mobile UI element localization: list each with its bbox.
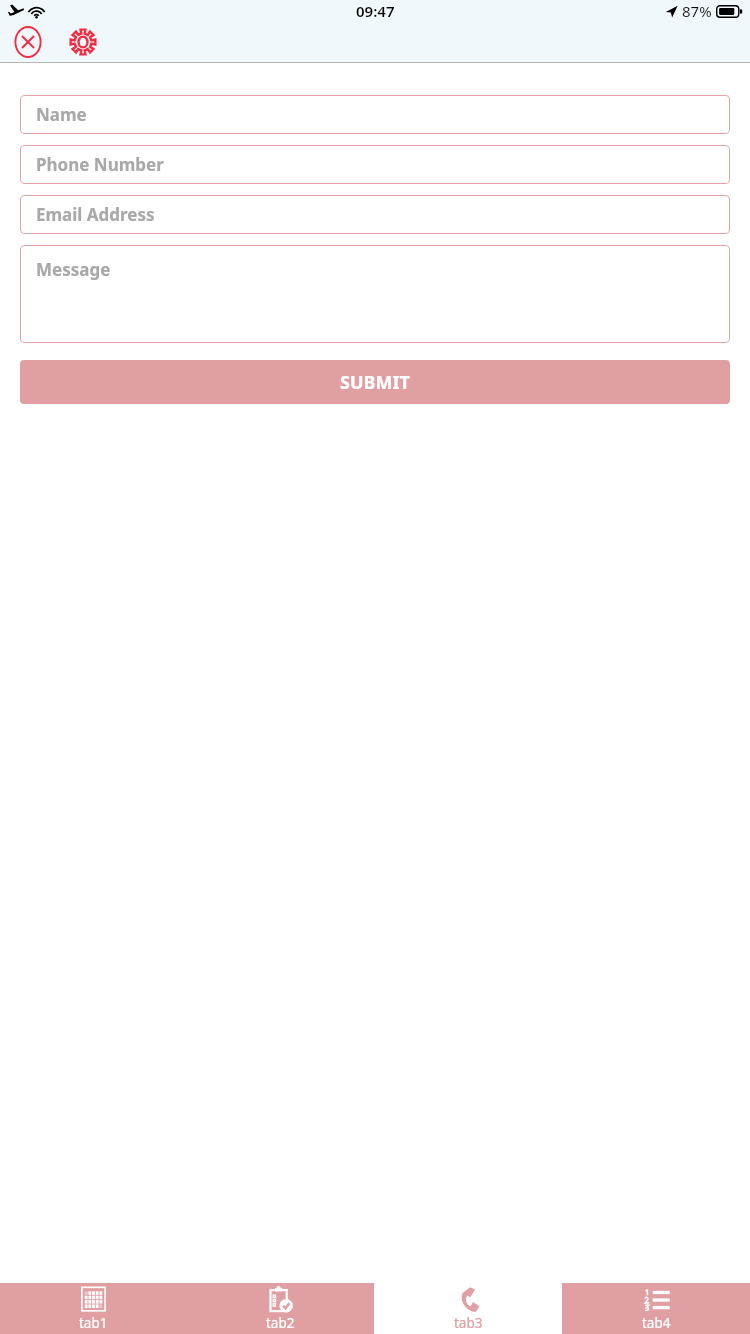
button[interactable]: tab1 — [0, 1283, 187, 1334]
staticText: Phone Number — [36, 153, 164, 176]
staticText: SUBMIT — [340, 370, 410, 395]
button[interactable]: tab4 — [562, 1283, 750, 1334]
staticText: tab4 — [642, 1314, 671, 1332]
button[interactable]: Close — [0, 21, 55, 62]
button[interactable]: tab2 — [187, 1283, 374, 1334]
staticText: 87% — [682, 1, 712, 21]
button[interactable]: SUBMIT — [20, 360, 730, 404]
staticText: tab1 — [79, 1314, 108, 1332]
staticText: Message — [36, 258, 111, 281]
button[interactable]: Settings — [55, 21, 111, 62]
staticText: tab3 — [454, 1314, 483, 1332]
button[interactable]: Email Address — [20, 195, 730, 234]
staticText: 09:47 — [356, 1, 395, 21]
staticText: Name — [36, 103, 87, 126]
button[interactable]: Name — [20, 95, 730, 134]
button[interactable]: tab3 — [374, 1283, 562, 1334]
button[interactable]: Message — [20, 245, 730, 343]
staticText: Email Address — [36, 203, 155, 226]
button[interactable]: Phone Number — [20, 145, 730, 184]
staticText: tab2 — [266, 1314, 295, 1332]
